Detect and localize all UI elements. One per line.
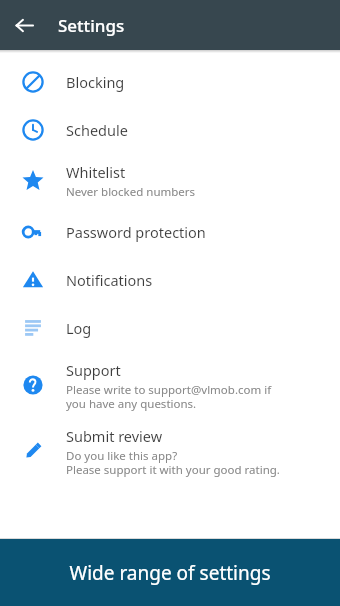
- staticText: Wide range of settings: [69, 560, 271, 586]
- button[interactable]: Support: [0, 352, 340, 418]
- staticText: Log: [66, 318, 92, 338]
- staticText: Settings: [58, 14, 125, 37]
- button[interactable]: Submit review: [0, 418, 340, 484]
- staticText: Whitelist: [66, 162, 126, 182]
- staticText: Please write to support@vlmob.com if you…: [66, 382, 272, 411]
- button[interactable]: Blocking: [0, 58, 340, 106]
- button[interactable]: Log: [0, 304, 340, 352]
- staticText: Never blocked numbers: [66, 184, 196, 200]
- staticText: Blocking: [66, 72, 125, 92]
- button[interactable]: Password protection: [0, 208, 340, 256]
- button[interactable]: Wide range of settings: [0, 539, 340, 606]
- staticText: Notifications: [66, 270, 153, 290]
- button[interactable]: Whitelist: [0, 154, 340, 208]
- button[interactable]: Back: [0, 1, 48, 49]
- staticText: Submit review: [66, 426, 163, 446]
- button[interactable]: Schedule: [0, 106, 340, 154]
- staticText: Do you like this app? Please support it …: [66, 448, 280, 477]
- button[interactable]: Notifications: [0, 256, 340, 304]
- staticText: Support: [66, 360, 121, 380]
- staticText: Password protection: [66, 222, 206, 242]
- staticText: Schedule: [66, 120, 128, 140]
